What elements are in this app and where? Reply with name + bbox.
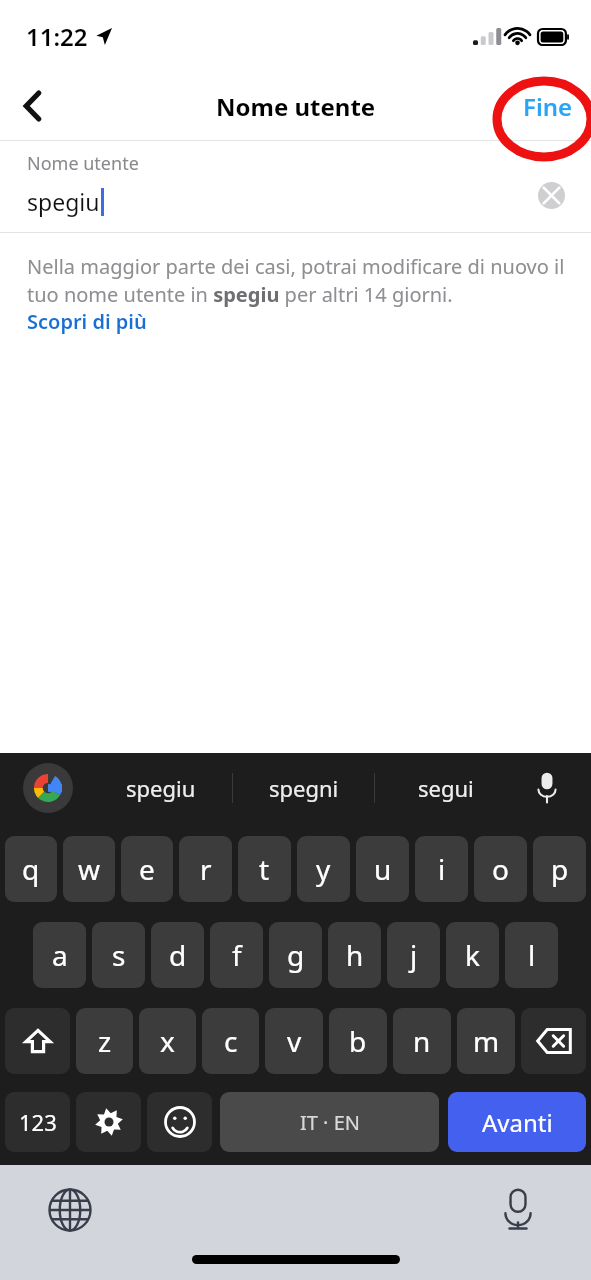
button[interactable]: p — [533, 836, 586, 902]
staticText: spegiu — [27, 186, 100, 217]
staticText: n — [413, 1022, 431, 1060]
staticText: Nome utente — [216, 90, 376, 123]
button[interactable]: l — [505, 922, 558, 988]
button[interactable]: x — [139, 1008, 196, 1074]
staticText: t — [259, 850, 270, 888]
button[interactable]: Backspace — [521, 1008, 586, 1074]
staticText: spegiu — [126, 773, 196, 803]
button[interactable]: z — [76, 1008, 133, 1074]
button[interactable]: Cancella — [536, 180, 566, 210]
button[interactable]: r — [179, 836, 232, 902]
staticText: z — [98, 1022, 112, 1060]
staticText: x — [160, 1022, 175, 1060]
button[interactable]: j — [387, 922, 440, 988]
button[interactable]: y — [297, 836, 350, 902]
button[interactable]: s — [92, 922, 145, 988]
button[interactable]: w — [63, 836, 115, 902]
button[interactable]: Cambia lingua — [45, 1185, 95, 1235]
staticText: s — [112, 936, 126, 974]
button[interactable]: o — [474, 836, 527, 902]
button[interactable]: IT · EN — [220, 1092, 439, 1152]
staticText: e — [139, 850, 155, 888]
staticText: q — [22, 850, 40, 888]
staticText: d — [169, 936, 187, 974]
staticText: j — [410, 936, 418, 974]
button[interactable]: u — [356, 836, 409, 902]
button[interactable]: c — [202, 1008, 259, 1074]
button[interactable]: spegiu — [90, 753, 232, 823]
button[interactable]: spegni — [233, 753, 374, 823]
staticText: v — [287, 1022, 302, 1060]
staticText: spegni — [269, 773, 339, 803]
staticText: w — [78, 850, 101, 888]
button[interactable]: k — [446, 922, 499, 988]
button[interactable]: Impostazioni — [76, 1092, 141, 1152]
button[interactable]: Scopri di più — [27, 308, 147, 335]
button[interactable]: d — [151, 922, 204, 988]
staticText: segui — [418, 773, 474, 803]
button[interactable]: Emoji — [147, 1092, 212, 1152]
button[interactable]: n — [393, 1008, 451, 1074]
button[interactable]: t — [238, 836, 291, 902]
button[interactable]: Google — [23, 763, 73, 813]
staticText: y — [316, 850, 331, 888]
button[interactable]: v — [265, 1008, 323, 1074]
staticText: u — [374, 850, 392, 888]
button[interactable]: Indietro — [4, 78, 60, 134]
button[interactable]: q — [5, 836, 57, 902]
staticText: Scopri di più — [27, 308, 147, 335]
staticText: a — [52, 936, 68, 974]
button[interactable]: f — [210, 922, 263, 988]
staticText: b — [349, 1022, 367, 1060]
staticText: 11:22 — [26, 20, 88, 53]
button[interactable]: m — [457, 1008, 515, 1074]
button[interactable]: h — [328, 922, 381, 988]
button[interactable]: segui — [375, 753, 516, 823]
staticText: 123 — [19, 1107, 57, 1137]
staticText: p — [551, 850, 569, 888]
staticText: Fine — [523, 90, 573, 123]
button[interactable]: i — [415, 836, 468, 902]
button[interactable]: Dettatura — [493, 1185, 543, 1235]
staticText: i — [438, 850, 446, 888]
staticText: IT · EN — [300, 1109, 360, 1136]
staticText: Nella maggior parte dei casi, potrai mod… — [27, 253, 567, 308]
staticText: f — [232, 936, 242, 974]
button[interactable]: Avanti — [448, 1092, 586, 1152]
staticText: k — [465, 936, 480, 974]
staticText: h — [346, 936, 364, 974]
button[interactable]: Fine — [523, 90, 573, 123]
button[interactable]: a — [33, 922, 86, 988]
button[interactable]: Maiuscole — [5, 1008, 70, 1074]
staticText: l — [528, 936, 536, 974]
button[interactable]: e — [121, 836, 173, 902]
button[interactable]: g — [269, 922, 322, 988]
button[interactable]: 123 — [5, 1092, 70, 1152]
staticText: Nome utente — [27, 151, 139, 176]
staticText: o — [492, 850, 509, 888]
staticText: g — [287, 936, 305, 974]
staticText: r — [200, 850, 212, 888]
button[interactable]: b — [329, 1008, 387, 1074]
staticText: Avanti — [482, 1106, 553, 1139]
staticText: c — [224, 1022, 238, 1060]
staticText: m — [473, 1022, 500, 1060]
button[interactable]: Dettatura vocale — [525, 766, 569, 810]
